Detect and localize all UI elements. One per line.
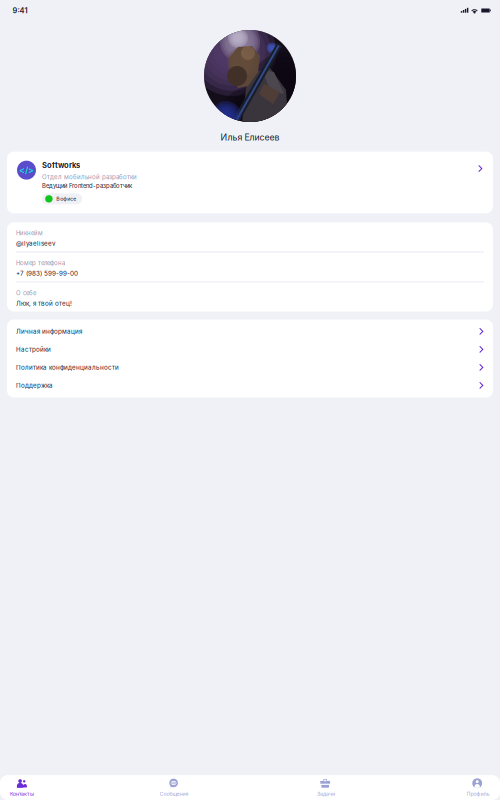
staticText: В офисе <box>56 196 76 202</box>
staticText: Ведущий Frontend-разработчик <box>42 182 132 189</box>
button[interactable]: Личная информация <box>7 322 493 340</box>
staticText: Никнейм <box>16 229 43 237</box>
staticText: Политика конфиденциальности <box>16 364 119 371</box>
staticText: Номер телефона <box>16 259 65 267</box>
staticText: Настройки <box>16 346 51 353</box>
staticText: @ilyaeliseev <box>16 240 56 247</box>
staticText: Поддержка <box>16 382 53 389</box>
staticText: +7 (983) 599-99-00 <box>16 270 78 277</box>
button[interactable]: </> <box>7 152 493 213</box>
staticText: Задачи <box>317 790 335 797</box>
button[interactable]: Сообщения <box>152 778 196 797</box>
staticText: О себе <box>16 289 36 297</box>
staticText: Сообщения <box>159 790 188 797</box>
button[interactable]: Контакты <box>0 778 44 797</box>
button[interactable]: Профиль <box>456 778 500 797</box>
staticText: Контакты <box>10 790 34 797</box>
button[interactable]: Настройки <box>7 340 493 358</box>
staticText: Профиль <box>466 790 489 797</box>
staticText: Softworks <box>42 161 80 170</box>
button[interactable]: Задачи <box>304 778 348 797</box>
staticText: Илья Елисеев <box>220 132 279 143</box>
staticText: </> <box>19 165 34 175</box>
staticText: Люк, я твой отец! <box>16 300 72 307</box>
button[interactable]: Поддержка <box>7 376 493 394</box>
staticText: Отдел мобильной разработки <box>42 173 137 181</box>
staticText: Личная информация <box>16 328 82 335</box>
staticText: 9:41 <box>12 6 27 15</box>
button[interactable]: Политика конфиденциальности <box>7 358 493 376</box>
